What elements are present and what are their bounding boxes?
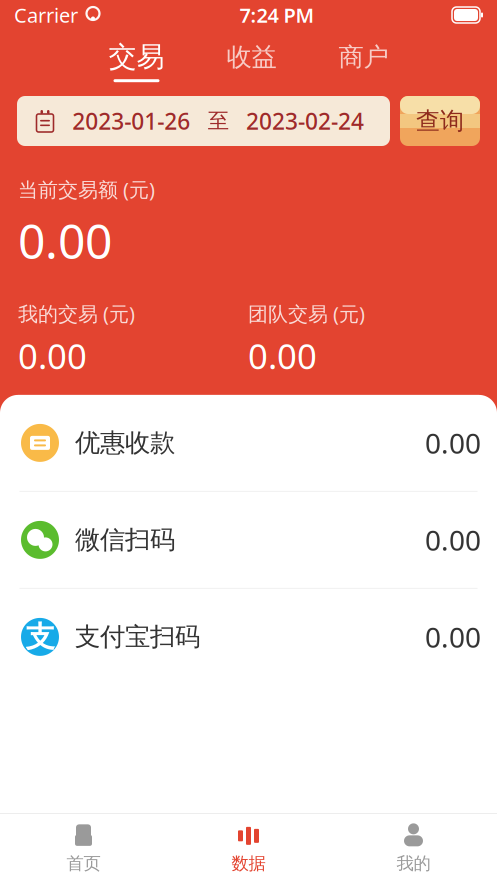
button[interactable]: 收益: [220, 37, 282, 84]
staticText: 0.00: [425, 521, 481, 558]
button[interactable]: 数据: [166, 814, 331, 883]
button[interactable]: 交易: [102, 36, 170, 86]
button[interactable]: 2023-01-26: [17, 96, 390, 146]
staticText: 至: [208, 108, 229, 134]
staticText: 0.00: [18, 209, 112, 272]
button[interactable]: 我的: [331, 814, 496, 883]
button[interactable]: 商户: [332, 37, 394, 84]
staticText: 商户: [338, 41, 388, 72]
button[interactable]: 微信扫码: [0, 492, 497, 588]
staticText: 0.00: [425, 618, 481, 655]
staticText: 0.00: [248, 333, 317, 379]
staticText: 支: [25, 619, 54, 655]
button[interactable]: 首页: [1, 814, 166, 883]
staticText: 0.00: [18, 333, 87, 379]
button[interactable]: 支: [0, 589, 497, 685]
staticText: 我的交易 (元): [18, 300, 135, 327]
staticText: 2023-02-24: [246, 106, 364, 136]
staticText: 收益: [226, 41, 276, 72]
staticText: 2023-01-26: [72, 106, 190, 136]
staticText: 支付宝扫码: [75, 621, 200, 652]
staticText: 查询: [416, 106, 464, 136]
staticText: 首页: [66, 853, 100, 874]
staticText: 7:24 PM: [239, 2, 314, 28]
button[interactable]: 优惠收款: [0, 395, 497, 491]
staticText: Carrier: [14, 2, 78, 28]
staticText: 我的: [396, 853, 430, 874]
staticText: 交易: [108, 40, 164, 74]
staticText: 0.00: [425, 424, 481, 461]
staticText: 当前交易额 (元): [18, 176, 155, 203]
button[interactable]: 查询: [400, 96, 480, 146]
staticText: 团队交易 (元): [248, 300, 365, 327]
staticText: 优惠收款: [75, 427, 175, 458]
staticText: 数据: [231, 853, 265, 874]
staticText: 微信扫码: [75, 524, 175, 555]
